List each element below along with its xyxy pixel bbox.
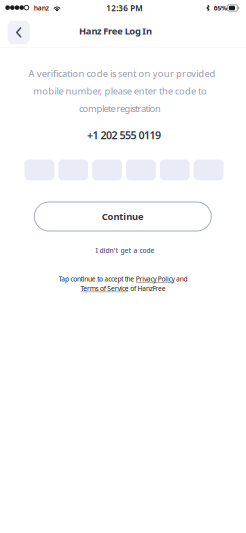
staticText: A verification code is sent on your prov… [28, 67, 215, 80]
staticText: 65% [214, 4, 227, 12]
button[interactable]: Back [7, 21, 30, 44]
staticText: Hanz Free Log In [79, 25, 152, 37]
staticText: hanz [34, 3, 49, 12]
staticText: +1 202 555 0119 [87, 128, 161, 142]
staticText: Continue [102, 210, 144, 223]
button[interactable]: I didn't get a code [80, 242, 170, 258]
staticText: complete registration [79, 102, 161, 115]
staticText: Tap continue to accept the Privacy Polic… [58, 275, 187, 283]
staticText: 12:36 PM [106, 3, 142, 13]
button[interactable]: Continue [34, 202, 211, 231]
staticText: I didn't get a code [95, 246, 154, 255]
staticText: mobile number, please enter the code to [33, 85, 207, 97]
staticText: Terms of Service of HanzFree [80, 284, 166, 293]
